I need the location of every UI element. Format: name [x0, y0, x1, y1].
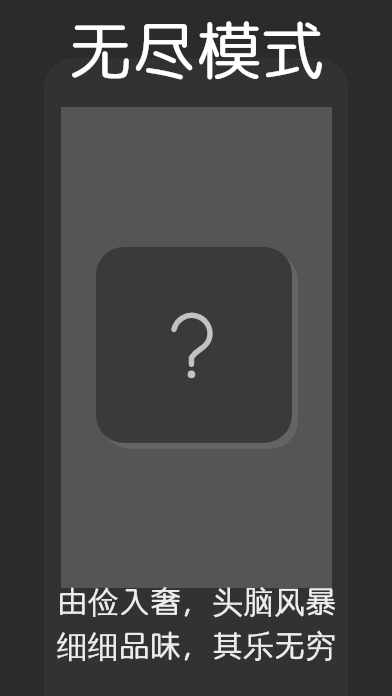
button[interactable]: Reveal card	[96, 247, 292, 443]
staticText: 无尽模式	[68, 5, 324, 94]
staticText: 由俭入奢，头脑风暴	[57, 580, 336, 623]
staticText: 细细品味，其乐无穷	[57, 624, 336, 667]
